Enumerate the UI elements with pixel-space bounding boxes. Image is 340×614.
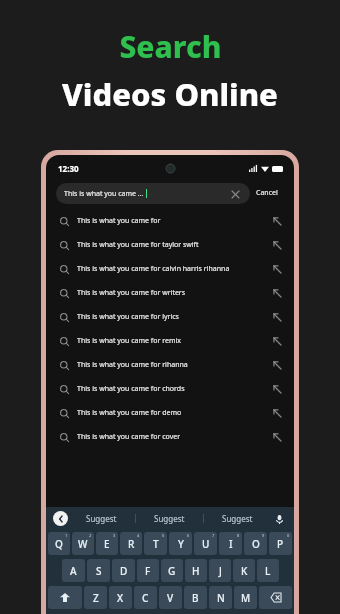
staticText: Z [93,591,99,605]
staticText: S [96,564,102,578]
button[interactable]: I [219,532,242,555]
button[interactable]: G [161,559,183,582]
staticText: T [153,537,159,551]
button[interactable]: This is what you came for remix [46,329,294,353]
button[interactable]: This is what you came for lyrics [46,305,294,329]
button[interactable]: A [62,559,85,582]
button[interactable]: C [134,586,157,609]
staticText: 7 [212,533,215,538]
button[interactable]: K [233,559,255,582]
staticText: This is what you came for [77,216,267,226]
staticText: Suggest [222,513,253,524]
staticText: L [265,564,271,578]
staticText: Search [119,26,222,67]
staticText: 6 [187,533,190,538]
button[interactable]: U [194,532,217,555]
staticText: Y [178,537,184,551]
staticText: 12:30 [58,163,79,174]
staticText: 3 [113,533,116,538]
staticText: This is what you came for cover [77,432,267,442]
button[interactable]: Clear [228,187,242,201]
button[interactable]: H [185,559,207,582]
staticText: This is what you came for rihanna [77,360,267,370]
button[interactable]: L [257,559,279,582]
staticText: F [145,564,151,578]
staticText: 8 [237,533,240,538]
staticText: W [78,537,88,551]
button[interactable]: S [87,559,110,582]
staticText: D [120,564,128,578]
staticText: Suggest [86,513,117,524]
staticText: Videos Online [62,73,278,115]
button[interactable]: W [72,532,94,555]
staticText: N [217,591,225,605]
staticText: A [70,564,77,578]
staticText: Q [55,537,63,551]
button[interactable]: Z [84,586,107,609]
button[interactable]: This is what you came for demo [46,401,294,425]
button[interactable]: R [120,532,142,555]
staticText: R [128,537,135,551]
staticText: This is what you came for demo [77,408,267,418]
button[interactable]: Y [169,532,192,555]
staticText: 4 [137,533,140,538]
staticText: J [219,564,222,578]
staticText: B [192,591,199,605]
staticText: P [277,537,284,551]
staticText: E [104,537,110,551]
button[interactable]: Back [53,511,68,526]
button[interactable]: F [137,559,159,582]
staticText: V [167,591,174,605]
button[interactable]: Cancel [250,184,284,202]
staticText: This is what you came for taylor swift [77,240,267,250]
staticText: Cancel [256,188,278,198]
button[interactable]: Suggest [136,507,203,530]
staticText: 1 [65,533,68,538]
staticText: 9 [262,533,265,538]
button[interactable]: This is what you came for writers [46,281,294,305]
button[interactable]: Suggest [68,507,135,530]
staticText: Suggest [154,513,185,524]
button[interactable]: V [159,586,182,609]
button[interactable]: This is what you came for rihanna [46,353,294,377]
button[interactable]: Suggest [204,507,271,530]
staticText: This is what you came for calvin harris … [77,264,267,274]
button[interactable]: B [184,586,207,609]
staticText: This is what you came for [64,189,145,199]
staticText: C [142,591,149,605]
staticText: H [192,564,200,578]
button[interactable]: N [209,586,232,609]
button[interactable]: E [96,532,118,555]
staticText: M [241,591,251,605]
staticText: G [168,564,176,578]
staticText: This is what you came for remix [77,336,267,346]
button[interactable]: This is what you came for [46,209,294,233]
button[interactable]: This is what you came for chords [46,377,294,401]
button[interactable]: P [269,532,292,555]
staticText: This is what you came for chords [77,384,267,394]
staticText: 5 [162,533,165,538]
staticText: 2 [89,533,92,538]
staticText: This is what you came for writers [77,288,267,298]
button[interactable]: Backspace [259,586,292,609]
button[interactable]: Voice input [271,511,287,527]
button[interactable]: This is what you came for taylor swift [46,233,294,257]
button[interactable]: Q [48,532,70,555]
staticText: I [229,537,233,551]
staticText: K [241,564,248,578]
staticText: 0 [287,533,290,538]
button[interactable]: D [112,559,135,582]
staticText: O [252,537,260,551]
staticText: This is what you came for lyrics [77,312,267,322]
button[interactable]: M [234,586,257,609]
button[interactable]: J [209,559,231,582]
button[interactable]: Shift [48,586,82,609]
button[interactable]: T [144,532,167,555]
button[interactable]: X [109,586,132,609]
staticText: X [117,591,124,605]
button[interactable]: This is what you came for calvin harris … [46,257,294,281]
button[interactable]: This is what you came for [56,183,250,204]
button[interactable]: O [244,532,267,555]
button[interactable]: This is what you came for cover [46,425,294,449]
staticText: U [202,537,210,551]
